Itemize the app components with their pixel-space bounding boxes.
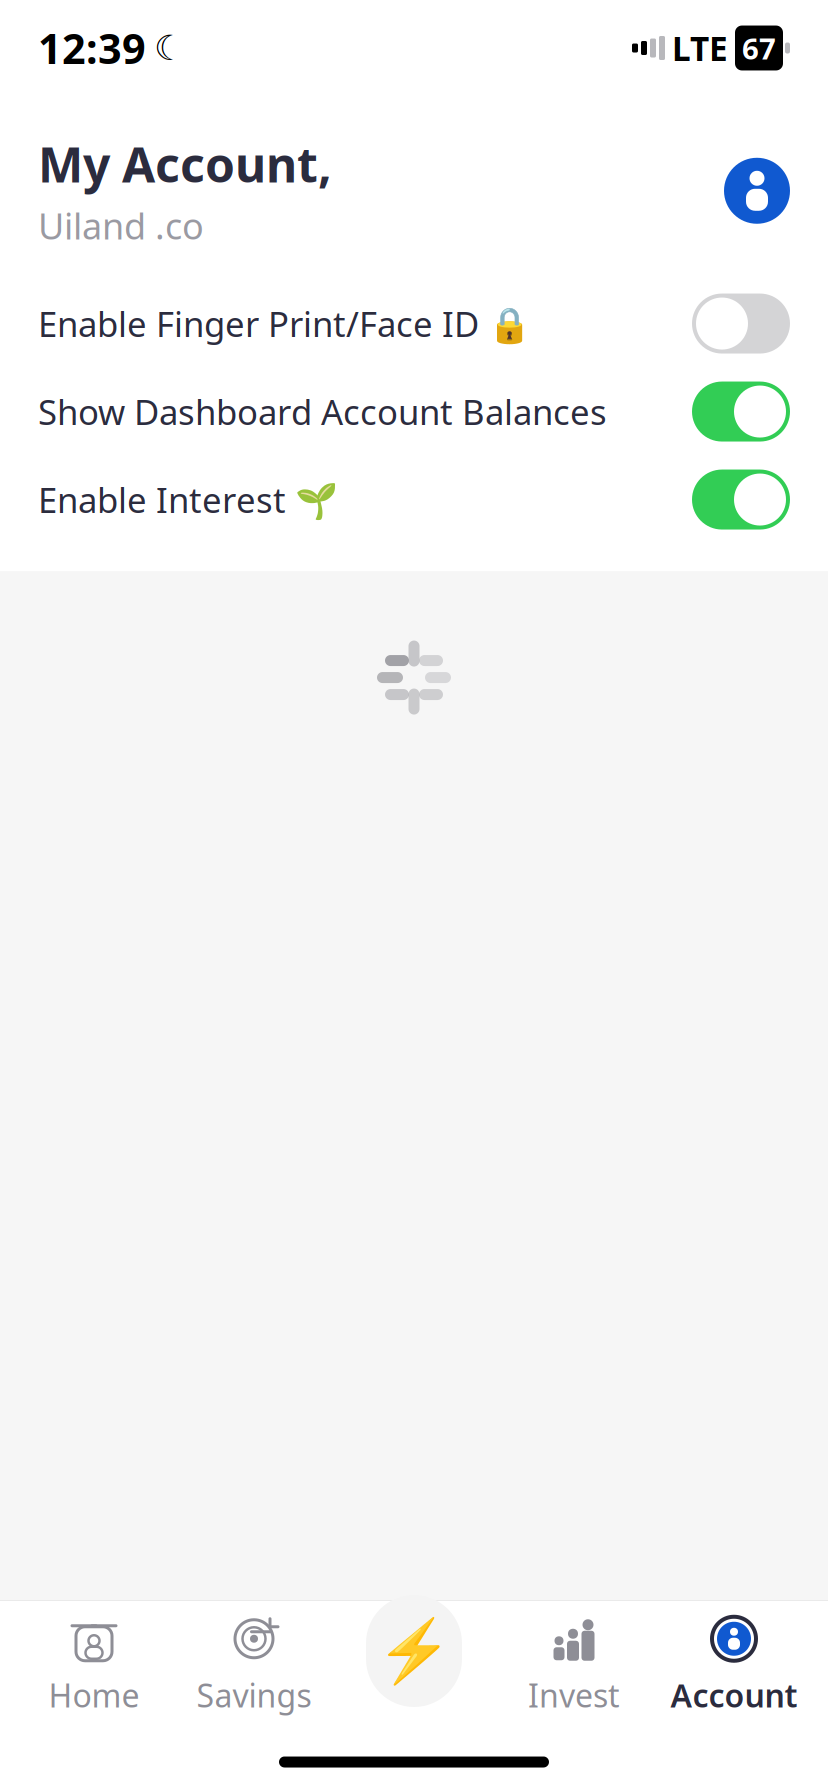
staticText: ⚡ xyxy=(376,1616,452,1686)
staticText: LTE xyxy=(672,26,728,70)
button[interactable]: Enable Finger Print/Face ID 🔒 xyxy=(0,279,828,367)
button[interactable]: Invest xyxy=(494,1600,654,1732)
staticText: Savings xyxy=(196,1674,311,1716)
button[interactable]: Home xyxy=(14,1600,174,1732)
staticText: Enable Finger Print/Face ID 🔒 xyxy=(38,300,531,346)
staticText: Uiland .co xyxy=(38,202,204,249)
staticText: 67 xyxy=(742,28,776,67)
staticText: Account xyxy=(670,1674,797,1716)
staticText: Home xyxy=(48,1674,139,1716)
staticText: Invest xyxy=(528,1674,620,1716)
staticText: Show Dashboard Account Balances xyxy=(38,388,607,434)
button[interactable]: Savings xyxy=(174,1600,334,1732)
staticText: ☾ xyxy=(154,28,185,68)
staticText: 12:39 xyxy=(38,21,146,75)
button[interactable]: Account xyxy=(654,1600,814,1732)
button[interactable]: Profile xyxy=(724,158,790,224)
button[interactable]: Quick action xyxy=(334,1595,494,1737)
staticText: Enable Interest 🌱 xyxy=(38,476,338,522)
staticText: My Account, xyxy=(38,132,332,196)
button[interactable]: Show Dashboard Account Balances xyxy=(0,367,828,455)
button[interactable]: Enable Interest 🌱 xyxy=(0,455,828,543)
